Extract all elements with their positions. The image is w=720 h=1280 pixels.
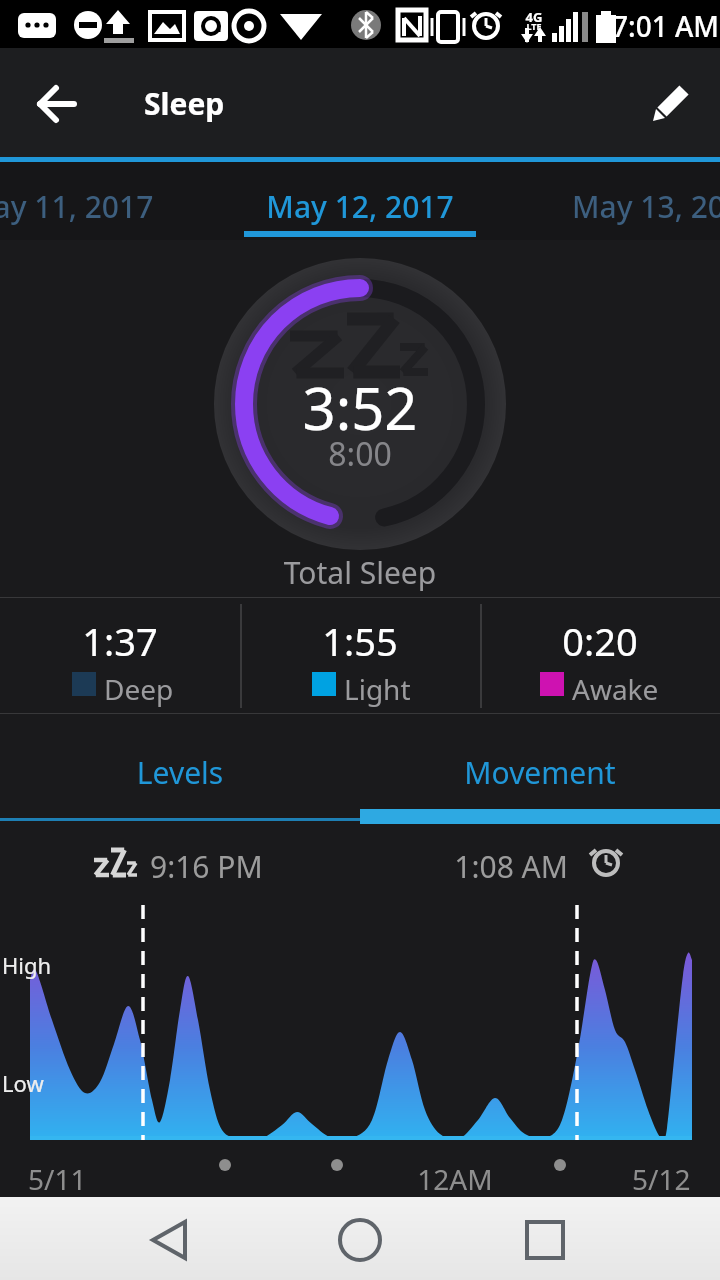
staticText: May 12, 2017 (240, 186, 480, 1280)
staticText: Light (344, 670, 464, 1280)
button[interactable] (0, 598, 240, 713)
staticText: 1:37 (0, 615, 240, 1280)
button[interactable] (130, 1205, 210, 1275)
staticText: Movement (360, 752, 720, 1280)
button[interactable] (240, 598, 480, 713)
staticText: 12AM (410, 1160, 500, 1280)
staticText: Total Sleep (210, 552, 510, 1280)
staticText: 5/11 (28, 1160, 108, 1280)
staticText: Awake (572, 670, 702, 1280)
button[interactable] (360, 714, 720, 824)
staticText: 4G (519, 8, 549, 1280)
staticText: 3:52 (210, 368, 510, 1280)
staticText: 9:16 PM (150, 846, 350, 1280)
staticText: Sleep (144, 83, 344, 1280)
staticText: LTE (519, 20, 549, 1280)
button[interactable] (240, 170, 480, 240)
button[interactable] (0, 714, 360, 824)
staticText: 8:00 (210, 432, 510, 1280)
staticText: 7:01 AM (612, 7, 720, 1280)
button[interactable] (480, 598, 720, 713)
button[interactable] (30, 80, 82, 128)
staticText: 5/12 (632, 1160, 712, 1280)
staticText: 1:08 AM (378, 846, 568, 1280)
staticText: May 13, 2017 (572, 186, 720, 1280)
staticText: May 11, 2017 (0, 186, 216, 1280)
staticText: 1:55 (240, 615, 480, 1280)
button[interactable] (505, 1205, 585, 1275)
staticText: Low (2, 1068, 62, 1280)
staticText: Deep (104, 670, 224, 1280)
staticText: High (2, 950, 62, 1280)
button[interactable] (640, 76, 700, 132)
staticText: Levels (0, 752, 360, 1280)
button[interactable] (320, 1205, 400, 1275)
staticText: 0:20 (480, 615, 720, 1280)
